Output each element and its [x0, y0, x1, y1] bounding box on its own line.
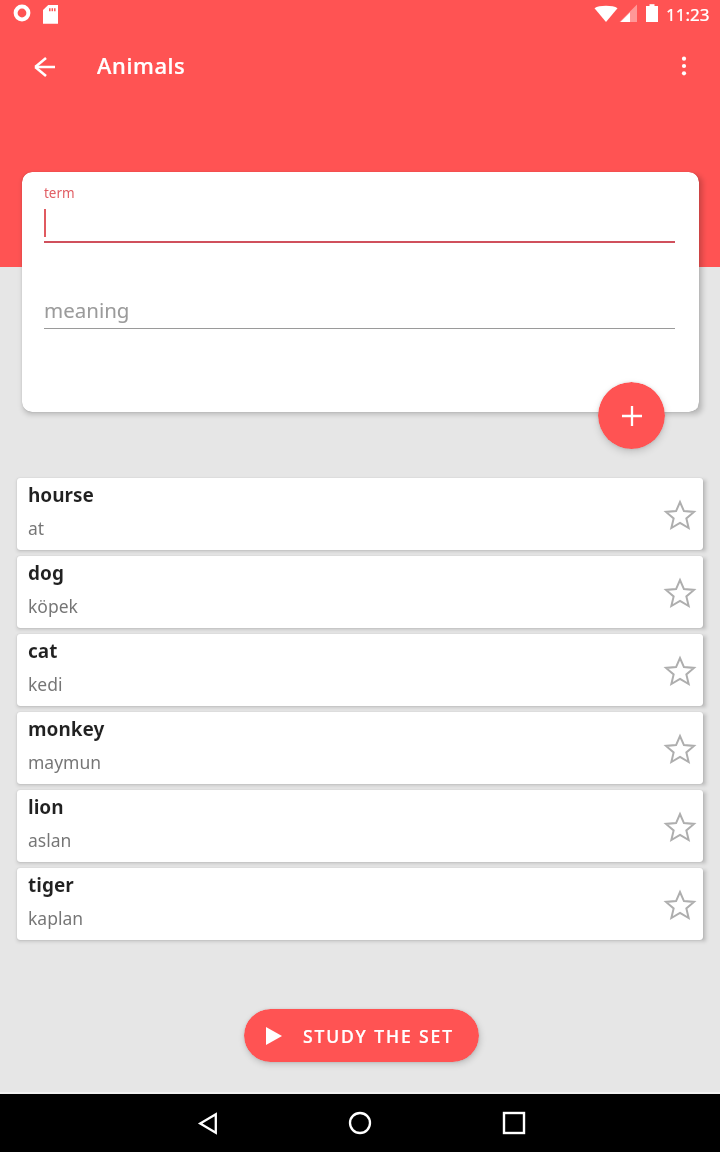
button[interactable]: Favorite	[656, 491, 703, 539]
button[interactable]: STUDY THE SET	[244, 1009, 479, 1062]
button[interactable]: Favorite	[656, 803, 703, 851]
button[interactable]: cat	[17, 634, 703, 706]
button[interactable]: Back	[182, 1097, 234, 1149]
button[interactable]: Add	[598, 382, 665, 449]
staticText: STUDY THE SET	[303, 1024, 454, 1048]
button[interactable]: Home	[334, 1097, 386, 1149]
staticText: maymun	[28, 750, 102, 774]
button[interactable]: Recents	[488, 1097, 540, 1149]
button[interactable]: Back	[21, 43, 69, 91]
button[interactable]: dog	[17, 556, 703, 628]
button[interactable]: Favorite	[656, 881, 703, 929]
button[interactable]: monkey	[17, 712, 703, 784]
button[interactable]: Favorite	[656, 647, 703, 695]
button[interactable]: lion	[17, 790, 703, 862]
staticText: at	[28, 516, 45, 540]
staticText: 11:23	[666, 3, 710, 26]
button[interactable]: tiger	[17, 868, 703, 940]
button[interactable]: More options	[660, 42, 708, 90]
staticText: hourse	[28, 482, 94, 508]
staticText: term	[44, 184, 75, 202]
staticText: monkey	[28, 716, 105, 742]
staticText: dog	[28, 560, 64, 586]
staticText: cat	[28, 638, 58, 664]
button[interactable]: Favorite	[656, 725, 703, 773]
staticText: lion	[28, 794, 64, 820]
button[interactable]: Favorite	[656, 569, 703, 617]
staticText: meaning	[44, 296, 130, 324]
button[interactable]: hourse	[17, 478, 703, 550]
staticText: köpek	[28, 594, 78, 618]
staticText: tiger	[28, 872, 74, 898]
staticText: aslan	[28, 828, 72, 852]
staticText: kaplan	[28, 906, 84, 930]
staticText: kedi	[28, 672, 63, 696]
staticText: Animals	[97, 50, 186, 80]
